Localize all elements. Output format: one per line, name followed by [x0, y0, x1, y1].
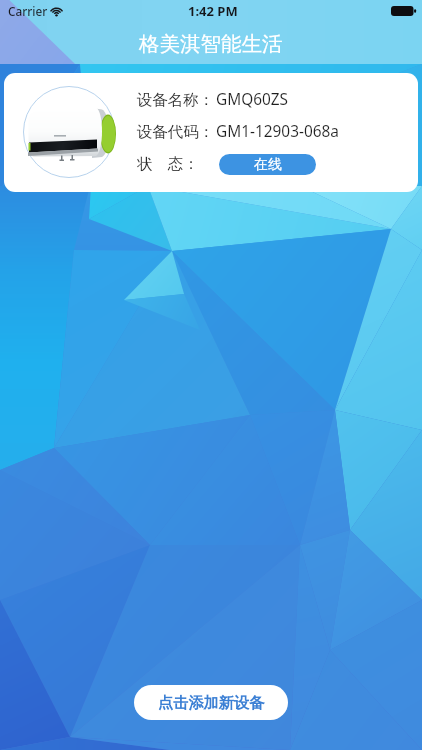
staticText: 状 态：	[137, 153, 199, 174]
staticText: 格美淇智能生活	[139, 31, 283, 57]
button[interactable]: 点击添加新设备	[134, 685, 288, 720]
button[interactable]: 在线	[219, 154, 316, 175]
staticText: Carrier	[8, 3, 48, 19]
button[interactable]: 设备名称：	[4, 73, 418, 192]
staticText: 1:42 PM	[188, 2, 238, 20]
other: Wi-Fi signal	[50, 6, 63, 19]
staticText: GMQ60ZS	[216, 89, 289, 110]
other: Battery full	[391, 6, 416, 16]
staticText: 在线	[254, 156, 282, 174]
staticText: GM1-12903-068a	[216, 121, 339, 142]
staticText: 设备代码：	[137, 122, 214, 141]
staticText: 设备名称：	[137, 90, 214, 109]
staticText: 点击添加新设备	[158, 693, 265, 712]
